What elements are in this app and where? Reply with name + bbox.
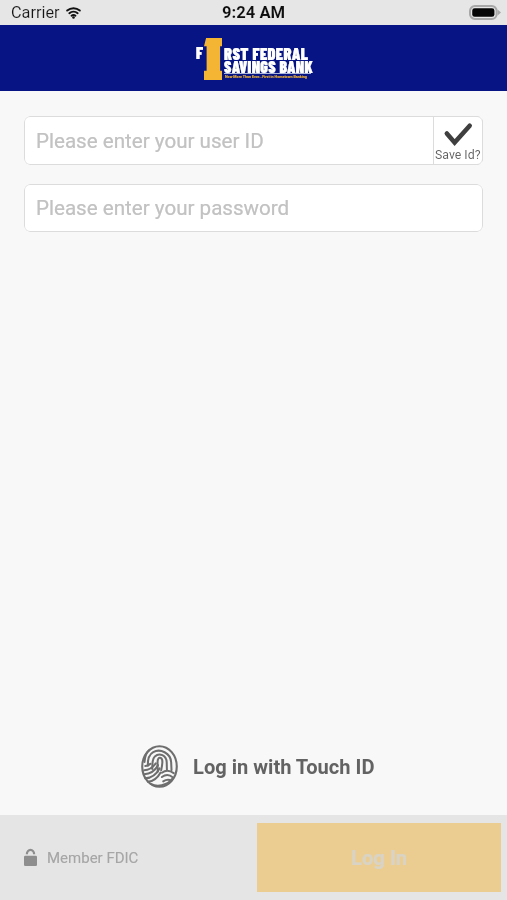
button[interactable]: Log in with Touch ID xyxy=(0,734,507,815)
button[interactable]: Please enter your password xyxy=(24,184,483,232)
staticText: F xyxy=(196,43,204,63)
staticText: Log in with Touch ID xyxy=(193,755,375,779)
staticText: Log In xyxy=(351,846,408,870)
staticText: Please enter your password xyxy=(36,196,290,220)
staticText: 9:24 AM xyxy=(222,3,286,22)
button[interactable]: Please enter your user ID xyxy=(24,116,433,165)
staticText: Now More Than Ever...First in Hometown B… xyxy=(225,75,307,79)
staticText: SAVINGS BANK xyxy=(224,57,314,76)
staticText: Member FDIC xyxy=(47,849,139,867)
staticText: Save Id? xyxy=(435,148,481,162)
button[interactable]: Save Id xyxy=(433,116,483,165)
button[interactable]: Log In xyxy=(257,823,501,892)
staticText: RST FEDERAL xyxy=(224,44,309,64)
staticText: Please enter your user ID xyxy=(36,129,264,153)
staticText: Carrier xyxy=(11,3,60,22)
